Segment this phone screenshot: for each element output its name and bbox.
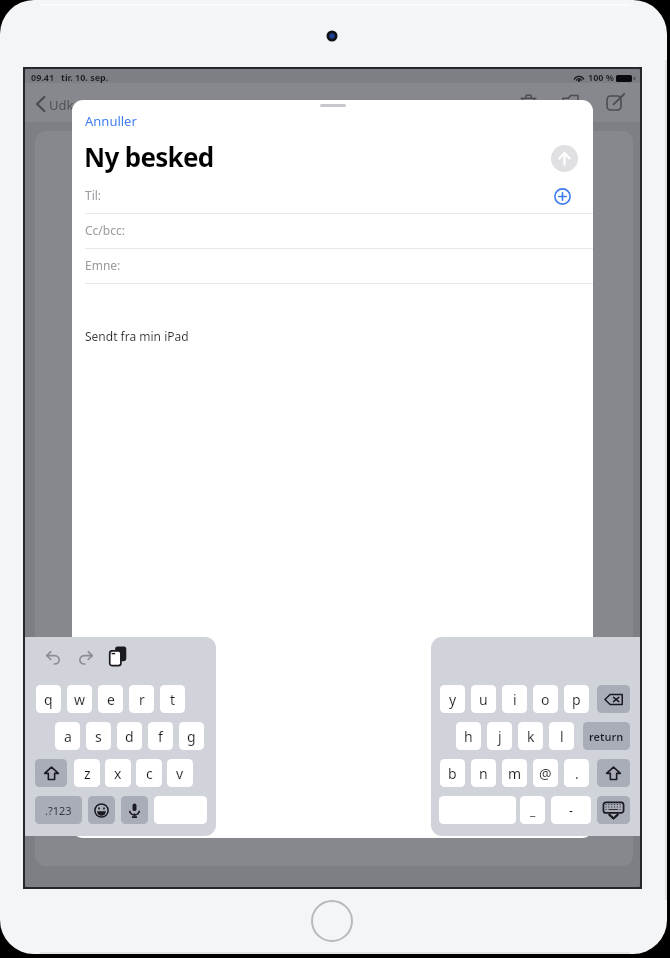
staticText: 100 % xyxy=(588,71,614,83)
button[interactable]: Add recipient xyxy=(551,185,574,208)
staticText: n xyxy=(479,764,488,783)
staticText: z xyxy=(84,764,91,783)
button[interactable]: @ xyxy=(533,759,558,787)
button[interactable]: z xyxy=(74,759,100,787)
staticText: - xyxy=(569,802,573,818)
staticText: Annuller xyxy=(85,112,137,130)
button[interactable]: Shift xyxy=(35,759,67,787)
button[interactable]: Hide keyboard xyxy=(597,796,630,824)
staticText: c xyxy=(146,764,153,783)
staticText: w xyxy=(74,690,86,709)
button[interactable]: c xyxy=(136,759,162,787)
button[interactable]: r xyxy=(129,685,154,713)
staticText: s xyxy=(95,727,102,746)
staticText: Emne: xyxy=(85,257,121,273)
button[interactable]: w xyxy=(67,685,92,713)
button[interactable]: - xyxy=(551,796,591,824)
button[interactable]: Undo xyxy=(41,644,65,668)
staticText: Til: xyxy=(85,187,102,203)
button[interactable]: Paste xyxy=(106,644,130,668)
button[interactable]: Send xyxy=(551,145,578,172)
button[interactable]: n xyxy=(471,759,496,787)
button[interactable]: k xyxy=(518,722,543,750)
button[interactable]: Space xyxy=(154,796,207,824)
staticText: g xyxy=(187,727,196,746)
button[interactable] xyxy=(72,215,593,248)
button[interactable]: l xyxy=(549,722,574,750)
staticText: 09.41 xyxy=(31,71,55,83)
staticText: j xyxy=(498,727,502,746)
button[interactable]: Redo xyxy=(73,644,97,668)
staticText: tir. 10. sep. xyxy=(61,71,109,83)
button[interactable]: return xyxy=(583,722,630,750)
staticText: m xyxy=(508,764,522,783)
button[interactable]: u xyxy=(471,685,496,713)
staticText: y xyxy=(449,690,457,709)
button[interactable] xyxy=(72,250,593,283)
button[interactable]: j xyxy=(487,722,512,750)
staticText: o xyxy=(541,690,550,709)
button[interactable]: v xyxy=(167,759,193,787)
staticText: v xyxy=(176,764,184,783)
staticText: @ xyxy=(539,764,552,783)
button[interactable]: _ xyxy=(520,796,545,824)
staticText: e xyxy=(107,690,115,709)
staticText: b xyxy=(448,764,457,783)
staticText: t xyxy=(170,690,176,709)
staticText: return xyxy=(589,729,624,744)
staticText: d xyxy=(125,727,134,746)
button[interactable]: Emoji xyxy=(88,796,115,824)
button[interactable]: i xyxy=(502,685,527,713)
staticText: l xyxy=(560,727,564,746)
staticText: h xyxy=(464,727,473,746)
button[interactable] xyxy=(72,180,593,213)
button[interactable]: h xyxy=(456,722,481,750)
button[interactable]: s xyxy=(86,722,111,750)
button[interactable]: m xyxy=(502,759,527,787)
staticText: f xyxy=(158,727,163,746)
staticText: i xyxy=(513,690,517,709)
button[interactable]: Space xyxy=(439,796,516,824)
staticText: p xyxy=(572,690,581,709)
staticText: k xyxy=(527,727,535,746)
button[interactable]: Dictate xyxy=(121,796,148,824)
button[interactable]: . xyxy=(564,759,589,787)
staticText: q xyxy=(44,690,53,709)
staticText: r xyxy=(139,690,145,709)
button[interactable]: q xyxy=(36,685,61,713)
button[interactable]: .?123 xyxy=(35,796,82,824)
staticText: _ xyxy=(530,802,536,818)
button[interactable]: Backspace xyxy=(597,685,630,713)
staticText: Ny besked xyxy=(84,139,214,174)
staticText: Cc/bcc: xyxy=(85,222,125,238)
staticText: x xyxy=(114,764,122,783)
staticText: u xyxy=(479,690,488,709)
button[interactable]: a xyxy=(55,722,80,750)
staticText: Udkast xyxy=(49,96,92,114)
button[interactable]: g xyxy=(179,722,204,750)
button[interactable]: Annuller xyxy=(80,110,144,132)
button[interactable]: e xyxy=(98,685,123,713)
button[interactable]: o xyxy=(533,685,558,713)
staticText: a xyxy=(64,727,72,746)
button[interactable]: f xyxy=(148,722,173,750)
button[interactable]: y xyxy=(440,685,465,713)
button[interactable]: d xyxy=(117,722,142,750)
button[interactable]: Shift xyxy=(597,759,630,787)
button[interactable]: t xyxy=(160,685,185,713)
button[interactable]: x xyxy=(105,759,131,787)
staticText: Sendt fra min iPad xyxy=(85,328,189,344)
button[interactable]: p xyxy=(564,685,589,713)
button[interactable]: b xyxy=(440,759,465,787)
staticText: . xyxy=(575,764,579,783)
staticText: .?123 xyxy=(45,803,72,818)
